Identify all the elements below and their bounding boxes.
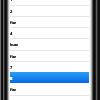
staticText: fizz — [10, 87, 16, 92]
staticText: fizz — [10, 54, 16, 59]
staticText: fizz — [10, 54, 16, 59]
button[interactable]: fizz — [9, 83, 90, 94]
button[interactable]: 1 — [9, 0, 90, 4]
staticText: 8 — [10, 76, 12, 81]
staticText: fizz — [10, 87, 16, 92]
button[interactable]: 2 — [9, 5, 90, 16]
staticText: fizz — [10, 20, 16, 25]
staticText: buzz — [10, 42, 18, 47]
button[interactable]: 7 — [9, 61, 90, 72]
staticText: 4 — [10, 31, 12, 36]
staticText: 2 — [10, 9, 12, 14]
button[interactable]: 8 — [9, 72, 90, 83]
staticText: 7 — [10, 65, 12, 70]
staticText: 4 — [10, 31, 12, 36]
staticText: 2 — [10, 9, 12, 14]
staticText: 8 — [10, 76, 12, 81]
staticText: 7 — [10, 65, 12, 70]
button[interactable]: 4 — [9, 27, 90, 38]
button[interactable]: fizz — [9, 16, 90, 27]
button[interactable]: buzz — [9, 38, 90, 49]
staticText: 1 — [10, 0, 12, 2]
button[interactable]: buzz — [9, 95, 90, 100]
staticText: 1 — [10, 0, 12, 2]
staticText: buzz — [10, 42, 18, 47]
button[interactable]: fizz — [9, 50, 90, 61]
staticText: fizz — [10, 20, 16, 25]
